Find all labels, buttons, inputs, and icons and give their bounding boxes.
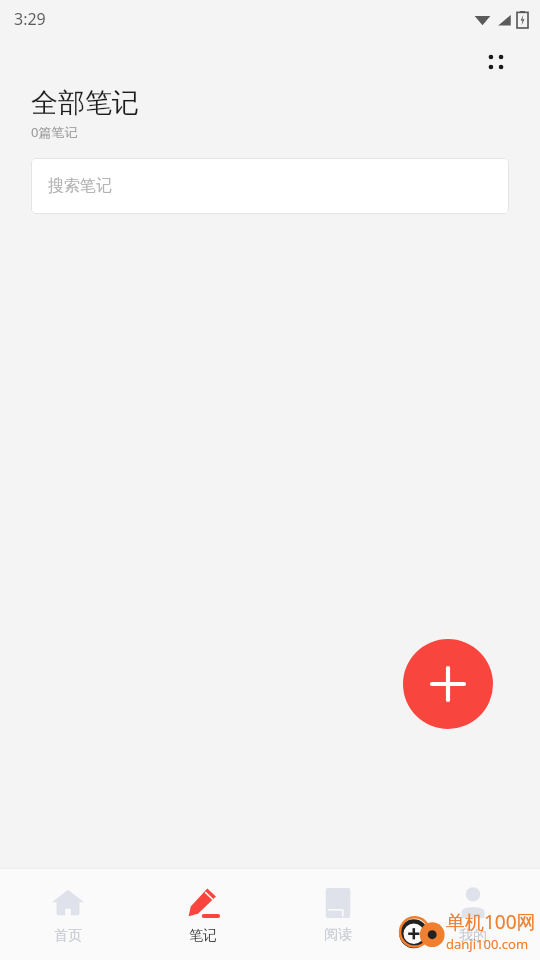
staticText: 3:29 (14, 8, 46, 30)
button[interactable]: More options (474, 40, 518, 84)
button[interactable]: 搜索笔记 (31, 158, 509, 214)
button[interactable]: 首页 (0, 869, 135, 960)
button[interactable]: 笔记 (135, 869, 270, 960)
staticText: 搜索笔记 (48, 176, 112, 196)
staticText: 我的 (459, 927, 487, 945)
button[interactable]: 我的 (405, 869, 540, 960)
staticText: danji100.com (446, 935, 529, 953)
staticText: 全部笔记 (31, 86, 139, 120)
staticText: 0篇笔记 (31, 123, 78, 141)
staticText: 单机100网 (446, 909, 536, 935)
button[interactable]: Add note (403, 639, 493, 729)
button[interactable]: 阅读 (270, 869, 405, 960)
staticText: 笔记 (189, 927, 217, 945)
staticText: 首页 (54, 927, 82, 945)
staticText: 阅读 (324, 926, 352, 944)
